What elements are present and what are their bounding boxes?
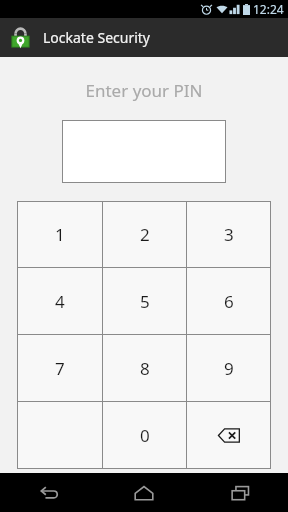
staticText: 9	[224, 357, 234, 380]
button[interactable]: 7	[18, 335, 102, 401]
button[interactable]: 6	[187, 268, 270, 334]
button[interactable]: Home	[96, 473, 192, 512]
staticText: 2	[140, 223, 150, 246]
staticText: 4	[55, 290, 65, 313]
button[interactable]: 2	[103, 202, 186, 267]
staticText: 3	[224, 223, 234, 246]
staticText: 7	[55, 357, 65, 380]
button[interactable]: Recents	[192, 473, 288, 512]
button[interactable]: Backspace	[187, 402, 270, 468]
button[interactable]: 5	[103, 268, 186, 334]
staticText: Lockate Security	[43, 28, 150, 47]
button[interactable]: 4	[18, 268, 102, 334]
button[interactable]: 3	[187, 202, 270, 267]
button[interactable]: 1	[18, 202, 102, 267]
staticText: 12:24	[253, 1, 284, 17]
button[interactable]: 9	[187, 335, 270, 401]
button[interactable]: 0	[103, 402, 186, 468]
staticText: 6	[224, 290, 234, 313]
button[interactable]: Back	[0, 473, 96, 512]
staticText: Enter your PIN	[0, 79, 288, 102]
staticText: 8	[140, 357, 150, 380]
staticText: 0	[140, 424, 150, 447]
staticText: 1	[55, 223, 65, 246]
staticText: 5	[140, 290, 150, 313]
button[interactable]: 8	[103, 335, 186, 401]
